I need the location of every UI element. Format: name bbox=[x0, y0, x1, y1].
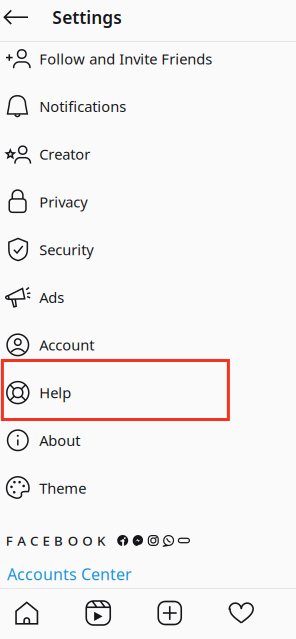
staticText: Settings bbox=[52, 6, 122, 29]
button[interactable]: Help bbox=[0, 369, 296, 416]
button[interactable]: Create bbox=[134, 588, 205, 638]
button[interactable]: Activity bbox=[205, 588, 277, 638]
staticText: Creator bbox=[39, 144, 90, 164]
staticText: About bbox=[39, 431, 80, 450]
button[interactable]: Ads bbox=[0, 273, 296, 321]
button[interactable]: Theme bbox=[0, 464, 296, 512]
button[interactable]: Home bbox=[0, 588, 62, 638]
staticText: Help bbox=[39, 383, 71, 402]
button[interactable]: Security bbox=[0, 226, 296, 273]
staticText: Accounts Center bbox=[7, 563, 132, 585]
button[interactable]: Privacy bbox=[0, 178, 296, 226]
button[interactable]: Account bbox=[0, 321, 296, 369]
button[interactable]: Accounts Center bbox=[0, 562, 296, 586]
staticText: Follow and Invite Friends bbox=[39, 49, 212, 68]
button[interactable]: Reels bbox=[62, 588, 134, 638]
button[interactable]: Notifications bbox=[0, 83, 296, 130]
staticText: Notifications bbox=[39, 97, 126, 116]
staticText: FACEBOOK bbox=[6, 532, 105, 549]
button[interactable]: Creator bbox=[0, 130, 296, 178]
staticText: Privacy bbox=[39, 192, 87, 212]
staticText: Security bbox=[39, 240, 93, 259]
button[interactable]: Back bbox=[1, 0, 31, 34]
button[interactable]: About bbox=[0, 416, 296, 464]
staticText: Theme bbox=[39, 478, 86, 498]
staticText: Ads bbox=[39, 287, 64, 307]
staticText: Account bbox=[39, 335, 94, 355]
button[interactable]: Follow and Invite Friends bbox=[0, 35, 296, 83]
